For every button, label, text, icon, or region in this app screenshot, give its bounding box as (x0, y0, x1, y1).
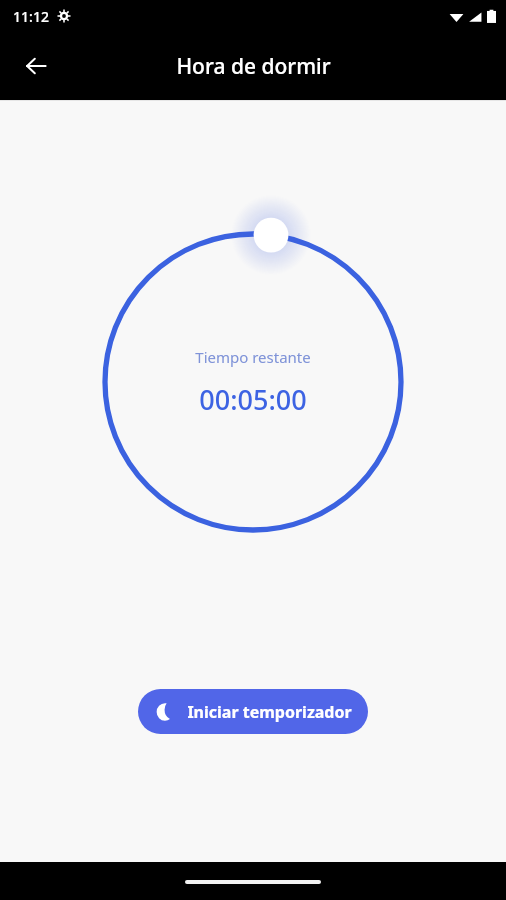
staticText: 11:12 (13, 7, 49, 26)
button[interactable]: Iniciar temporizador (138, 689, 368, 734)
staticText: Iniciar temporizador (187, 701, 352, 723)
staticText: Hora de dormir (176, 52, 331, 81)
button[interactable]: Back (12, 42, 60, 90)
staticText: Tiempo restante (195, 347, 311, 367)
staticText: 00:05:00 (199, 381, 307, 418)
